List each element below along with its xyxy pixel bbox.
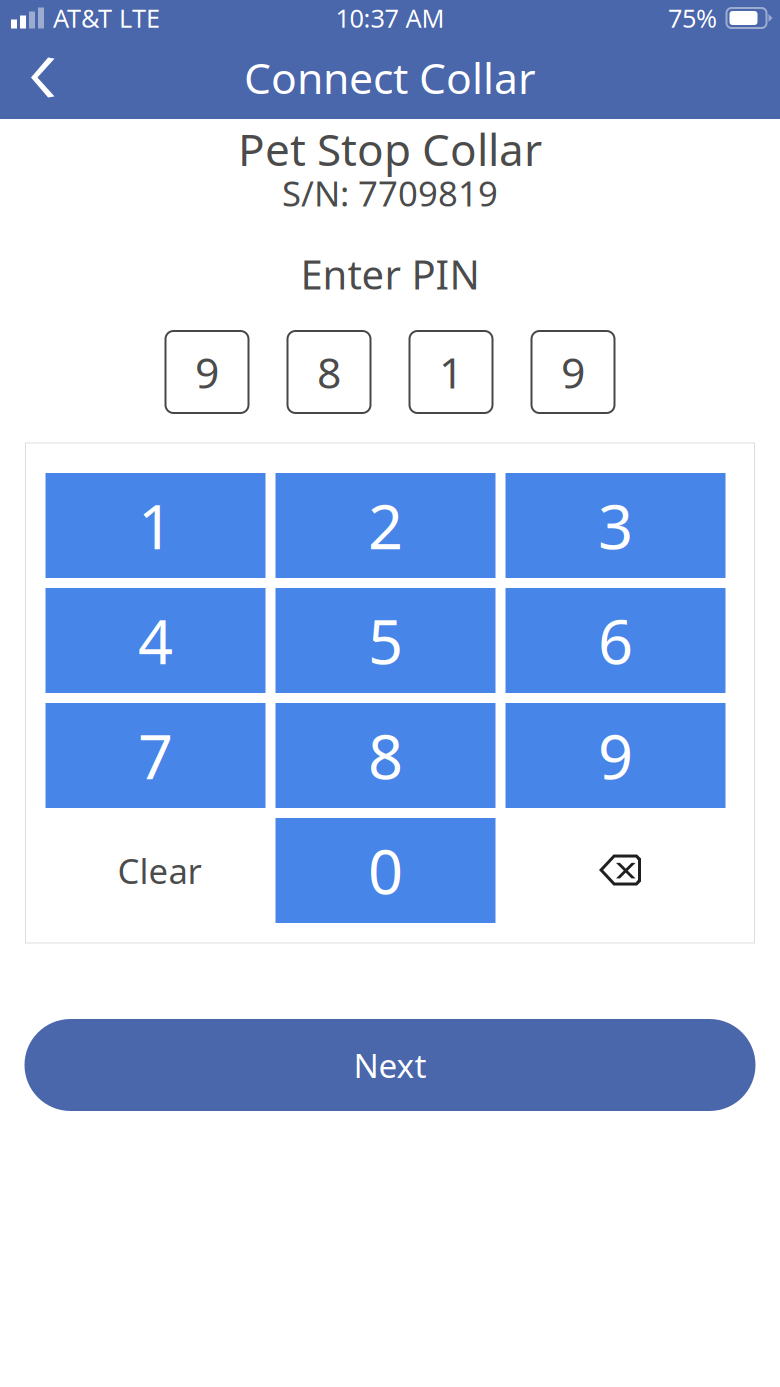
staticText: Connect Collar: [244, 49, 536, 106]
staticText: 2: [368, 485, 403, 566]
staticText: 4: [138, 600, 173, 681]
staticText: AT&T LTE: [53, 1, 160, 35]
staticText: Clear: [117, 847, 201, 893]
staticText: 0: [368, 830, 403, 911]
button[interactable]: 9: [505, 703, 725, 808]
staticText: 7: [138, 715, 173, 796]
button[interactable]: Next: [24, 1019, 755, 1111]
staticText: 75%: [668, 1, 717, 35]
staticText: 10:37 AM: [335, 1, 444, 35]
staticText: 9: [598, 715, 633, 796]
button[interactable]: 7: [45, 703, 265, 808]
staticText: 1: [138, 485, 173, 566]
staticText: 9: [561, 344, 585, 400]
staticText: 3: [598, 485, 633, 566]
button[interactable]: 5: [275, 588, 495, 693]
staticText: 9: [195, 344, 219, 400]
staticText: S/N: 7709819: [282, 170, 498, 216]
button[interactable]: 6: [505, 588, 725, 693]
button[interactable]: 8: [275, 703, 495, 808]
button[interactable]: Backspace: [505, 818, 725, 923]
button[interactable]: 4: [45, 588, 265, 693]
button[interactable]: 2: [275, 473, 495, 578]
staticText: 8: [317, 344, 341, 400]
staticText: Pet Stop Collar: [238, 120, 542, 178]
staticText: 8: [368, 715, 403, 796]
staticText: 6: [598, 600, 633, 681]
button[interactable]: 1: [45, 473, 265, 578]
staticText: Enter PIN: [300, 247, 479, 300]
button[interactable]: Clear: [45, 818, 265, 923]
staticText: 1: [439, 344, 463, 400]
button[interactable]: 0: [275, 818, 495, 923]
staticText: 5: [368, 600, 403, 681]
staticText: Next: [353, 1043, 426, 1087]
button[interactable]: Back: [0, 43, 76, 111]
button[interactable]: 3: [505, 473, 725, 578]
